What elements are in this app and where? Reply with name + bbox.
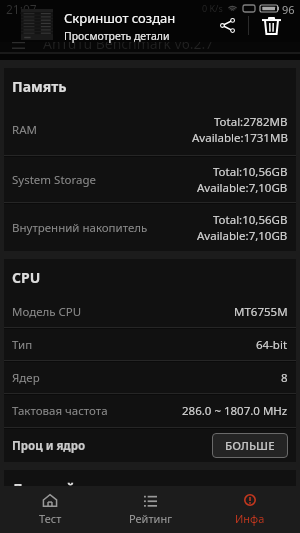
- button[interactable]: Внутренний накопитель: [4, 204, 296, 251]
- staticText: Available:1731MB: [192, 130, 288, 146]
- staticText: БОЛЬШЕ: [225, 438, 275, 454]
- button[interactable]: Инфа: [200, 486, 300, 533]
- staticText: Тест: [39, 511, 62, 526]
- button[interactable]: Модель CPU: [4, 296, 296, 329]
- staticText: 8: [281, 370, 288, 386]
- button[interactable]: Share: [211, 9, 244, 42]
- button[interactable]: Ядер: [4, 362, 296, 395]
- staticText: 0 K/s: [202, 2, 223, 14]
- staticText: Total:10,56GB: [213, 212, 288, 228]
- staticText: AnTuTu Benchmark v6.2.7: [43, 34, 214, 53]
- staticText: Внутренний накопитель: [12, 220, 148, 236]
- staticText: Проц и ядро: [12, 438, 86, 454]
- staticText: Ядер: [12, 370, 40, 386]
- staticText: Тип: [12, 337, 33, 353]
- staticText: 286.0 ~ 1807.0 MHz: [182, 403, 288, 419]
- staticText: Available:7,10GB: [197, 228, 288, 244]
- staticText: Инфа: [235, 511, 265, 526]
- staticText: Тактовая частота: [12, 403, 108, 419]
- button[interactable]: БОЛЬШЕ: [212, 433, 288, 458]
- button[interactable]: Menu: [4, 31, 33, 53]
- button[interactable]: Тип: [4, 329, 296, 362]
- button[interactable]: Рейтинг: [100, 486, 200, 533]
- button[interactable]: System Storage: [4, 157, 296, 204]
- staticText: 21:07: [6, 1, 37, 17]
- staticText: System Storage: [12, 172, 97, 188]
- button[interactable]: Тактовая частота: [4, 395, 296, 429]
- staticText: Рейтинг: [129, 511, 172, 526]
- staticText: Модель CPU: [12, 304, 82, 320]
- staticText: MT6755M: [234, 304, 288, 320]
- button[interactable]: Проц и ядро: [12, 429, 288, 462]
- staticText: Total:10,56GB: [213, 164, 288, 180]
- button[interactable]: Delete: [255, 9, 288, 42]
- button[interactable]: RAM: [4, 105, 296, 157]
- staticText: RAM: [12, 122, 37, 138]
- staticText: Просмотреть детали: [64, 29, 170, 43]
- staticText: 64-bit: [256, 337, 288, 353]
- button[interactable]: Тест: [0, 486, 100, 533]
- staticText: Дисплей: [12, 479, 76, 498]
- staticText: Скриншот создан: [64, 9, 176, 27]
- staticText: CPU: [12, 268, 41, 287]
- staticText: Available:7,10GB: [197, 180, 288, 196]
- staticText: 96: [282, 2, 295, 14]
- staticText: Память: [12, 77, 67, 96]
- staticText: Total:2782MB: [214, 114, 288, 130]
